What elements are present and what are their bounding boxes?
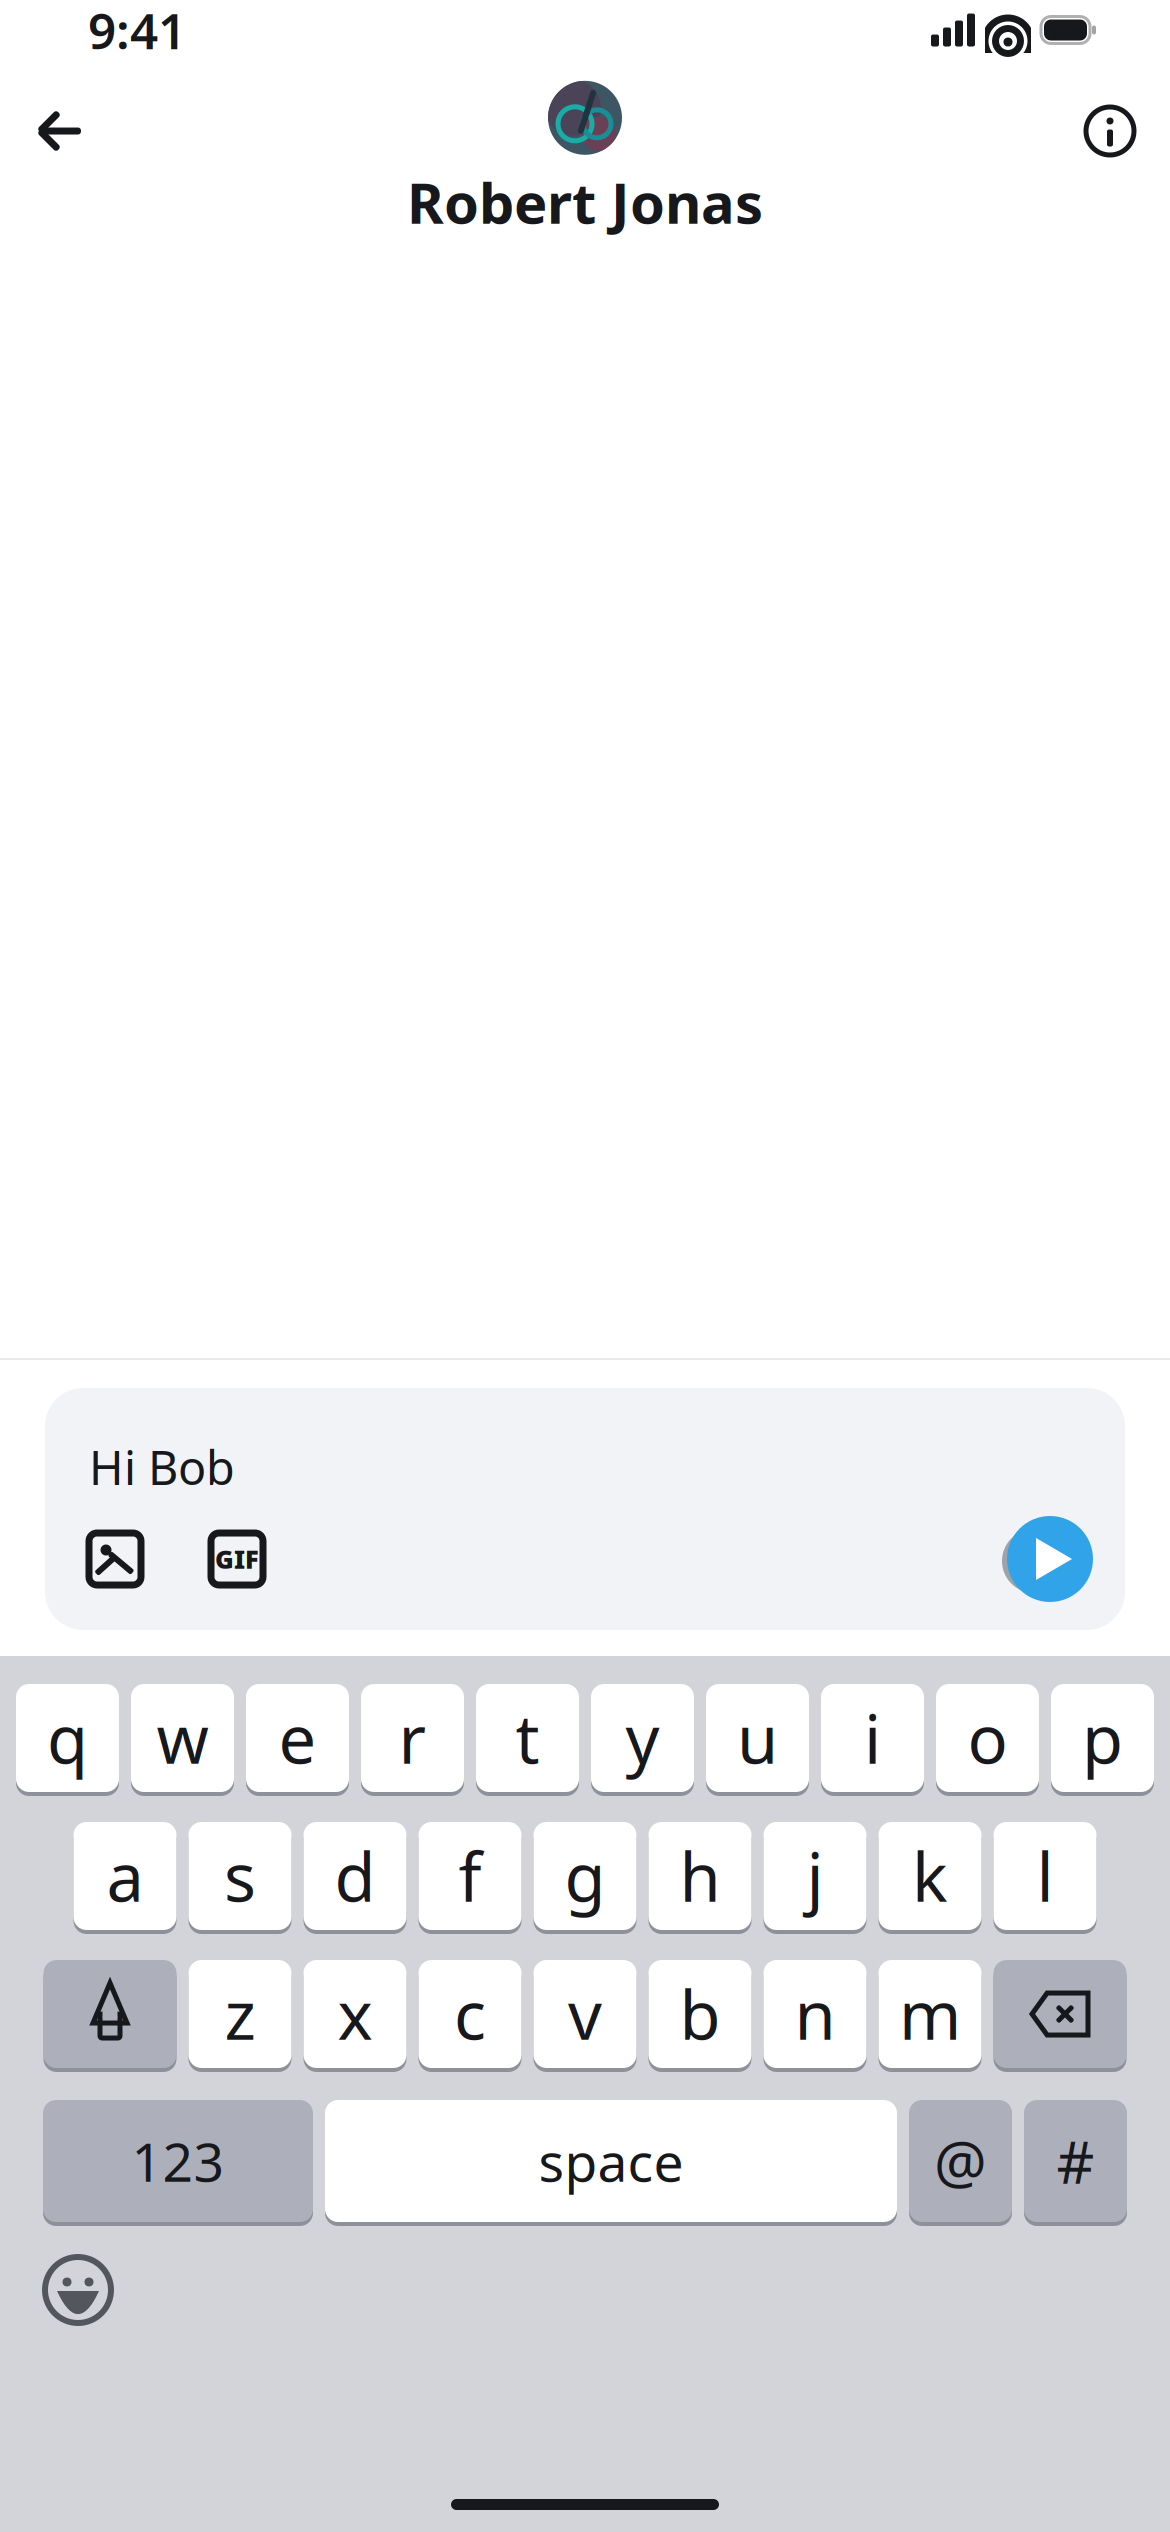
staticText: t	[515, 1694, 539, 1782]
button[interactable]: q	[16, 1682, 119, 1794]
button[interactable]: d	[303, 1820, 406, 1932]
staticText: r	[398, 1694, 426, 1782]
staticText: h	[679, 1832, 720, 1920]
staticText: a	[106, 1832, 143, 1920]
staticText: 9:41	[88, 0, 186, 63]
button[interactable]: Back	[34, 105, 86, 157]
button[interactable]: p	[1051, 1682, 1154, 1794]
staticText: y	[625, 1694, 659, 1782]
button[interactable]: r	[361, 1682, 464, 1794]
staticText: v	[568, 1970, 602, 2058]
button[interactable]: m	[878, 1958, 981, 2070]
button[interactable]: w	[131, 1682, 234, 1794]
button[interactable]: t	[476, 1682, 579, 1794]
button[interactable]: b	[648, 1958, 751, 2070]
button[interactable]: x	[303, 1958, 406, 2070]
staticText: e	[278, 1694, 316, 1782]
staticText: l	[1036, 1832, 1053, 1920]
staticText: @	[934, 2122, 987, 2200]
button[interactable]: z	[188, 1958, 291, 2070]
button[interactable]: i	[821, 1682, 924, 1794]
staticText: q	[47, 1694, 88, 1782]
staticText: z	[224, 1970, 255, 2058]
button[interactable]: a	[73, 1820, 176, 1932]
button[interactable]: u	[706, 1682, 809, 1794]
button[interactable]: space	[325, 2098, 897, 2224]
button[interactable]: c	[418, 1958, 521, 2070]
staticText: GIF	[215, 1542, 259, 1576]
staticText: x	[337, 1970, 372, 2058]
staticText: Robert Jonas	[407, 165, 763, 239]
button[interactable]: @	[909, 2098, 1012, 2224]
staticText: s	[224, 1832, 256, 1920]
button[interactable]: l	[993, 1820, 1096, 1932]
button[interactable]: f	[418, 1820, 521, 1932]
button[interactable]: h	[648, 1820, 751, 1932]
staticText: b	[679, 1970, 720, 2058]
button[interactable]: 123	[43, 2098, 313, 2224]
staticText: f	[458, 1832, 481, 1920]
staticText: u	[737, 1694, 778, 1782]
button[interactable]: Attach photo	[87, 1531, 143, 1587]
button[interactable]: n	[763, 1958, 866, 2070]
staticText: #	[1056, 2122, 1094, 2200]
staticText: p	[1082, 1694, 1123, 1782]
button[interactable]: j	[763, 1820, 866, 1932]
button[interactable]: Shift	[43, 1958, 176, 2070]
staticText: w	[156, 1694, 208, 1782]
button[interactable]: y	[591, 1682, 694, 1794]
staticText: 123	[131, 2126, 224, 2196]
button[interactable]: Send	[1005, 1514, 1095, 1604]
staticText: j	[806, 1832, 823, 1920]
staticText: g	[564, 1832, 605, 1920]
button[interactable]: v	[533, 1958, 636, 2070]
button[interactable]: g	[533, 1820, 636, 1932]
staticText: o	[967, 1694, 1007, 1782]
staticText: c	[454, 1970, 486, 2058]
button[interactable]: s	[188, 1820, 291, 1932]
button[interactable]: o	[936, 1682, 1039, 1794]
button[interactable]: Attach GIF	[209, 1531, 265, 1587]
staticText: Hi Bob	[89, 1436, 235, 1498]
button[interactable]: Conversation info	[1084, 105, 1136, 157]
button[interactable]: k	[878, 1820, 981, 1932]
button[interactable]: e	[246, 1682, 349, 1794]
button[interactable]: Emoji	[0, 2254, 114, 2326]
staticText: d	[334, 1832, 375, 1920]
button[interactable]: Delete	[993, 1958, 1126, 2070]
button[interactable]: #	[1024, 2098, 1127, 2224]
staticText: k	[912, 1832, 948, 1920]
staticText: m	[899, 1970, 961, 2058]
staticText: space	[538, 2126, 683, 2196]
staticText: i	[864, 1694, 881, 1782]
staticText: n	[794, 1970, 835, 2058]
